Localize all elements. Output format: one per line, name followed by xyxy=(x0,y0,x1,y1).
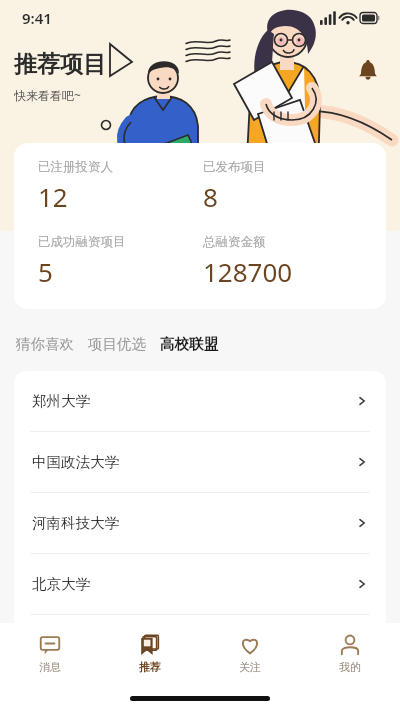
staticText: 12 xyxy=(38,179,68,214)
staticText: 128700 xyxy=(203,254,293,289)
staticText: 郑州大学 xyxy=(32,392,90,410)
staticText: 高校联盟 xyxy=(160,335,218,353)
button[interactable]: 北京大学 xyxy=(14,554,386,614)
button[interactable]: Notifications xyxy=(352,55,384,87)
staticText: 中国政法大学 xyxy=(32,453,119,471)
staticText: 9:41 xyxy=(22,8,52,28)
staticText: 推荐 xyxy=(139,660,161,674)
button[interactable]: 项目优选 xyxy=(88,331,146,357)
staticText: 项目优选 xyxy=(88,335,146,353)
staticText: 消息 xyxy=(39,660,61,674)
button[interactable]: 消息 xyxy=(0,623,100,685)
staticText: 8 xyxy=(203,179,218,214)
button[interactable]: 猜你喜欢 xyxy=(16,331,74,357)
button[interactable]: 河南科技大学 xyxy=(14,493,386,553)
staticText: 已注册投资人 xyxy=(38,159,113,175)
staticText: 已发布项目 xyxy=(203,159,266,175)
button[interactable]: 推荐 xyxy=(100,623,200,685)
staticText: 猜你喜欢 xyxy=(16,335,74,353)
staticText: 我的 xyxy=(339,660,361,674)
button[interactable]: 高校联盟 xyxy=(160,331,218,357)
staticText: 推荐项目 xyxy=(14,50,106,79)
button[interactable]: 关注 xyxy=(200,623,300,685)
staticText: 北京大学 xyxy=(32,575,90,593)
button[interactable]: 郑州大学 xyxy=(14,371,386,431)
staticText: 总融资金额 xyxy=(203,234,266,250)
button[interactable]: 我的 xyxy=(300,623,400,685)
staticText: 已成功融资项目 xyxy=(38,234,126,250)
button[interactable]: 中国政法大学 xyxy=(14,432,386,492)
staticText: 关注 xyxy=(239,660,261,674)
staticText: 快来看看吧~ xyxy=(14,87,81,103)
staticText: 5 xyxy=(38,254,53,289)
staticText: 河南科技大学 xyxy=(32,514,119,532)
